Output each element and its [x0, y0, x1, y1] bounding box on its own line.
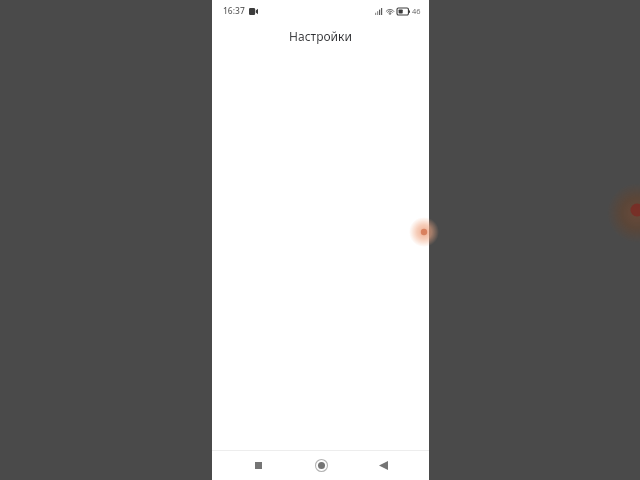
button[interactable]: Home — [304, 451, 338, 480]
staticText: 16:37 — [223, 5, 245, 17]
button[interactable]: Back — [366, 451, 400, 480]
button[interactable]: Recent apps — [241, 451, 275, 480]
staticText: Настройки — [289, 28, 352, 44]
staticText: 46 — [412, 6, 421, 16]
